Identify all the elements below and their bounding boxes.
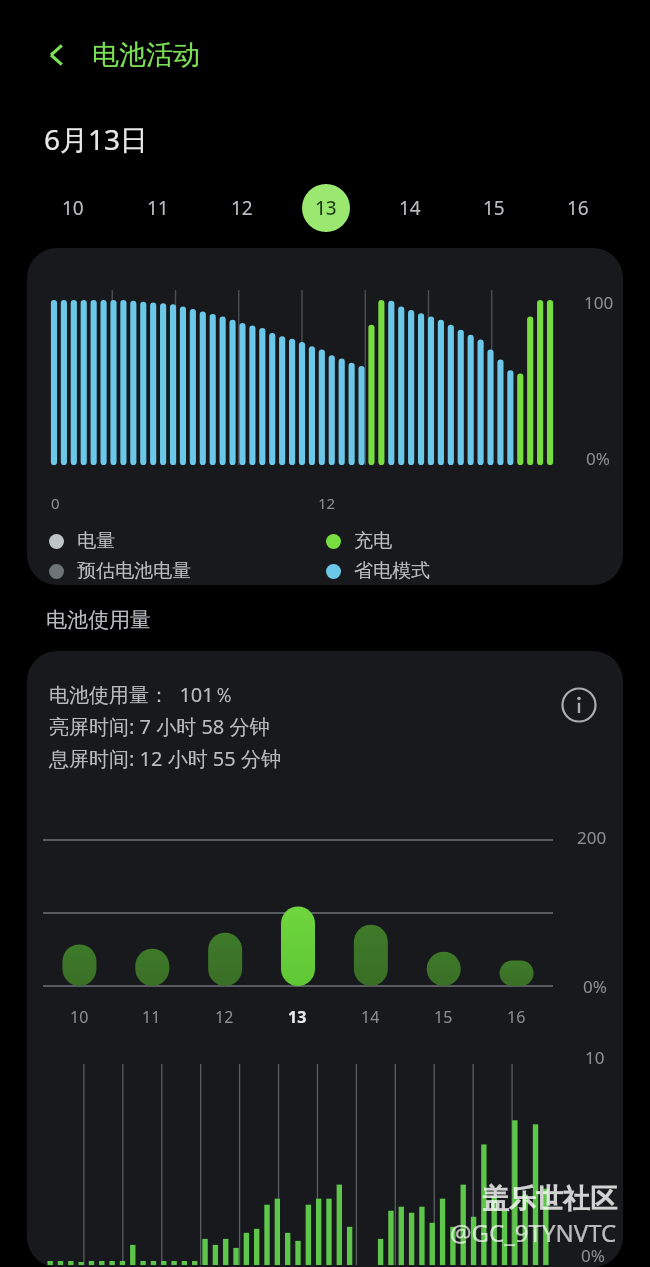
staticText: 14 [399, 195, 421, 221]
staticText: 15 [434, 1006, 453, 1028]
staticText: 电池活动 [92, 38, 200, 72]
button[interactable]: 15 [452, 180, 536, 236]
staticText: 0 [51, 493, 60, 513]
staticText: 充电 [354, 529, 392, 553]
staticText: 10 [62, 195, 84, 221]
staticText: 13 [315, 195, 337, 221]
staticText: 13 [288, 1006, 307, 1028]
staticText: 14 [361, 1006, 380, 1028]
staticText: @GC_9TYNVTC [450, 1216, 617, 1249]
button[interactable]: 0 [27, 248, 623, 585]
staticText: 11 [142, 1006, 161, 1028]
button[interactable]: 10 [30, 180, 115, 236]
staticText: 电池使用量： 101％ [49, 681, 234, 708]
button[interactable]: Back [34, 32, 80, 78]
button[interactable]: 14 [368, 180, 452, 236]
staticText: 200 [577, 826, 607, 849]
staticText: 预估电池电量 [77, 559, 191, 583]
staticText: 0% [581, 1244, 605, 1267]
button[interactable]: 16 [536, 180, 620, 236]
staticText: 16 [507, 1006, 526, 1028]
button[interactable]: 11 [115, 180, 200, 236]
staticText: 息屏时间: 12 小时 55 分钟 [49, 745, 281, 772]
staticText: 15 [483, 195, 505, 221]
staticText: 省电模式 [354, 559, 430, 583]
staticText: 12 [231, 195, 253, 221]
staticText: 6月13日 [44, 120, 149, 158]
staticText: 100 [584, 291, 614, 314]
staticText: 盖乐世社区 [482, 1182, 617, 1216]
staticText: 11 [147, 195, 169, 221]
staticText: 0% [586, 447, 610, 470]
button[interactable]: 13 [284, 180, 368, 236]
staticText: 12 [215, 1006, 234, 1028]
staticText: 10 [70, 1006, 89, 1028]
staticText: 电池使用量 [46, 607, 151, 633]
staticText: 16 [567, 195, 589, 221]
staticText: 0% [583, 975, 607, 998]
staticText: 电量 [77, 529, 115, 553]
button[interactable]: Information [557, 683, 601, 727]
staticText: 10 [585, 1046, 605, 1069]
staticText: 12 [318, 493, 336, 513]
button[interactable]: 电池使用量： 101％ [27, 651, 623, 1267]
button[interactable]: 12 [200, 180, 284, 236]
staticText: 亮屏时间: 7 小时 58 分钟 [49, 713, 270, 740]
